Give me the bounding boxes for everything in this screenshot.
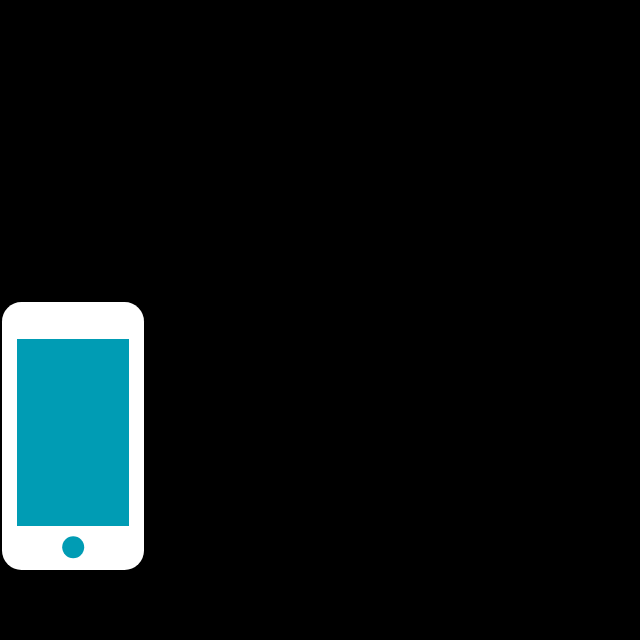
button[interactable]: Smartphone: [2, 302, 144, 570]
